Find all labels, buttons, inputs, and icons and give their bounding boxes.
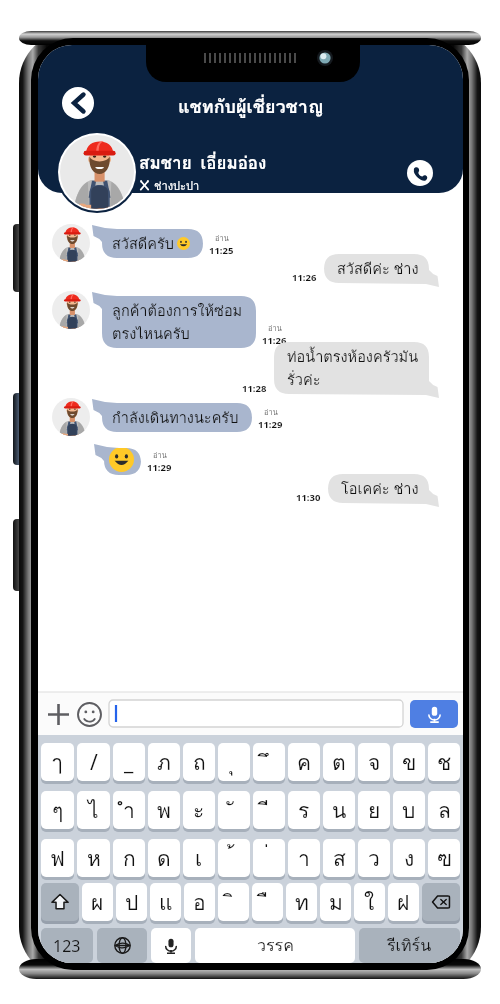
button[interactable]: กำลังเดินทางนะครับ (112, 406, 239, 429)
button[interactable]: ึ (253, 743, 285, 781)
button[interactable]: ่ (253, 839, 285, 877)
staticText: ตรงไหนครับ (112, 322, 190, 345)
button[interactable]: ิ (218, 883, 249, 921)
button[interactable]: ง (393, 839, 425, 877)
staticText: ส (333, 842, 346, 875)
button[interactable]: ผ (82, 883, 113, 921)
button[interactable]: ้ (218, 839, 250, 877)
button[interactable] (109, 700, 403, 727)
button[interactable]: า (288, 839, 320, 877)
button[interactable]: Call (407, 160, 433, 186)
button[interactable]: ภ (148, 743, 180, 781)
button[interactable]: ถ (183, 743, 215, 781)
staticText: ค (297, 746, 312, 779)
staticText: 123 (53, 935, 81, 957)
button[interactable]: วรรค (195, 928, 355, 963)
button[interactable]: แ (150, 883, 181, 921)
staticText: _ (124, 748, 134, 777)
button[interactable]: ฟ (41, 839, 74, 877)
button[interactable]: / (77, 743, 110, 781)
staticText: แ (159, 886, 173, 919)
staticText: สมชาย เอี่ยมอ่อง (139, 149, 267, 176)
button[interactable]: บ (393, 791, 425, 829)
button[interactable]: ป (116, 883, 147, 921)
button[interactable]: พ (148, 791, 180, 829)
button[interactable]: ว (358, 839, 390, 877)
button[interactable]: ใ (354, 883, 385, 921)
button[interactable]: ำ (113, 791, 145, 829)
button[interactable]: ข (393, 743, 425, 781)
staticText: 11:30 (296, 491, 321, 504)
button[interactable]: ช (428, 743, 460, 781)
button[interactable]: ท (286, 883, 317, 921)
staticText: 11:26 (262, 334, 287, 347)
staticText: ห (87, 842, 101, 875)
button[interactable]: ร (288, 791, 320, 829)
button[interactable]: Key (41, 883, 79, 921)
button[interactable]: ฝ (388, 883, 419, 921)
staticText: ด (157, 842, 171, 875)
staticText: บ (402, 794, 416, 827)
button[interactable]: ี (253, 791, 285, 829)
button[interactable]: ก (113, 839, 145, 877)
button[interactable]: ม (320, 883, 351, 921)
staticText: อ่าน (215, 232, 229, 244)
button[interactable] (109, 447, 134, 472)
button[interactable]: ๅ (41, 743, 74, 781)
staticText: ท่อน้ำตรงห้องครัวมัน (287, 345, 419, 368)
staticText: ล (438, 794, 451, 827)
button[interactable]: Attach (43, 699, 73, 729)
button[interactable]: ส (323, 839, 355, 877)
button[interactable]: ต (323, 743, 355, 781)
button[interactable]: เ (183, 839, 215, 877)
staticText: สวัสดีครับ (112, 232, 174, 255)
button[interactable]: ค (288, 743, 320, 781)
staticText: รีเทิร์น (387, 933, 432, 958)
staticText: 11:25 (209, 244, 234, 257)
button[interactable]: 123 (41, 928, 93, 963)
button[interactable]: Profile photo (60, 135, 134, 209)
staticText: กำลังเดินทางนะครับ (112, 406, 239, 429)
staticText: สวัสดีค่ะ ช่าง (337, 257, 419, 280)
staticText: ไ (88, 794, 99, 827)
staticText: ๆ (52, 794, 64, 827)
button[interactable]: ย (358, 791, 390, 829)
staticText: 11:29 (258, 418, 283, 431)
button[interactable]: ลูกค้าต้องการให้ซ่อม (112, 299, 243, 345)
button[interactable]: จ (358, 743, 390, 781)
button[interactable]: ๆ (41, 791, 74, 829)
button[interactable]: _ (113, 743, 145, 781)
staticText: รั่วค่ะ (287, 368, 321, 391)
button[interactable]: สวัสดีครับ (112, 232, 190, 255)
button[interactable]: สวัสดีค่ะ ช่าง (337, 257, 419, 280)
button[interactable]: ห (77, 839, 110, 877)
button[interactable]: ล (428, 791, 460, 829)
button[interactable]: Voice input (410, 700, 458, 728)
staticText: ะ (193, 794, 205, 827)
button[interactable]: ไ (77, 791, 110, 829)
button[interactable]: อ (184, 883, 215, 921)
staticText: ม (329, 886, 343, 919)
button[interactable]: ุ (218, 743, 250, 781)
button[interactable]: Back (62, 87, 94, 119)
staticText: ฃ (437, 842, 452, 875)
button[interactable]: โอเคค่ะ ช่าง (341, 477, 419, 500)
button[interactable]: รีเทิร์น (359, 928, 460, 963)
staticText: 11:29 (147, 461, 172, 474)
button[interactable]: ฃ (428, 839, 460, 877)
staticText: ร (298, 794, 310, 827)
button[interactable]: ท่อน้ำตรงห้องครัวมัน (287, 345, 419, 391)
button[interactable]: Emoji (74, 699, 104, 729)
button[interactable]: Voice (151, 928, 191, 963)
button[interactable]: Key (422, 883, 460, 921)
staticText: ข (402, 746, 417, 779)
button[interactable]: น (323, 791, 355, 829)
button[interactable]: ั (218, 791, 250, 829)
button[interactable]: ื (252, 883, 283, 921)
button[interactable]: Language (97, 928, 147, 963)
staticText: ถ (193, 746, 206, 779)
button[interactable]: ะ (183, 791, 215, 829)
staticText: ช (437, 746, 452, 779)
staticText: อ่าน (153, 449, 167, 461)
button[interactable]: ด (148, 839, 180, 877)
